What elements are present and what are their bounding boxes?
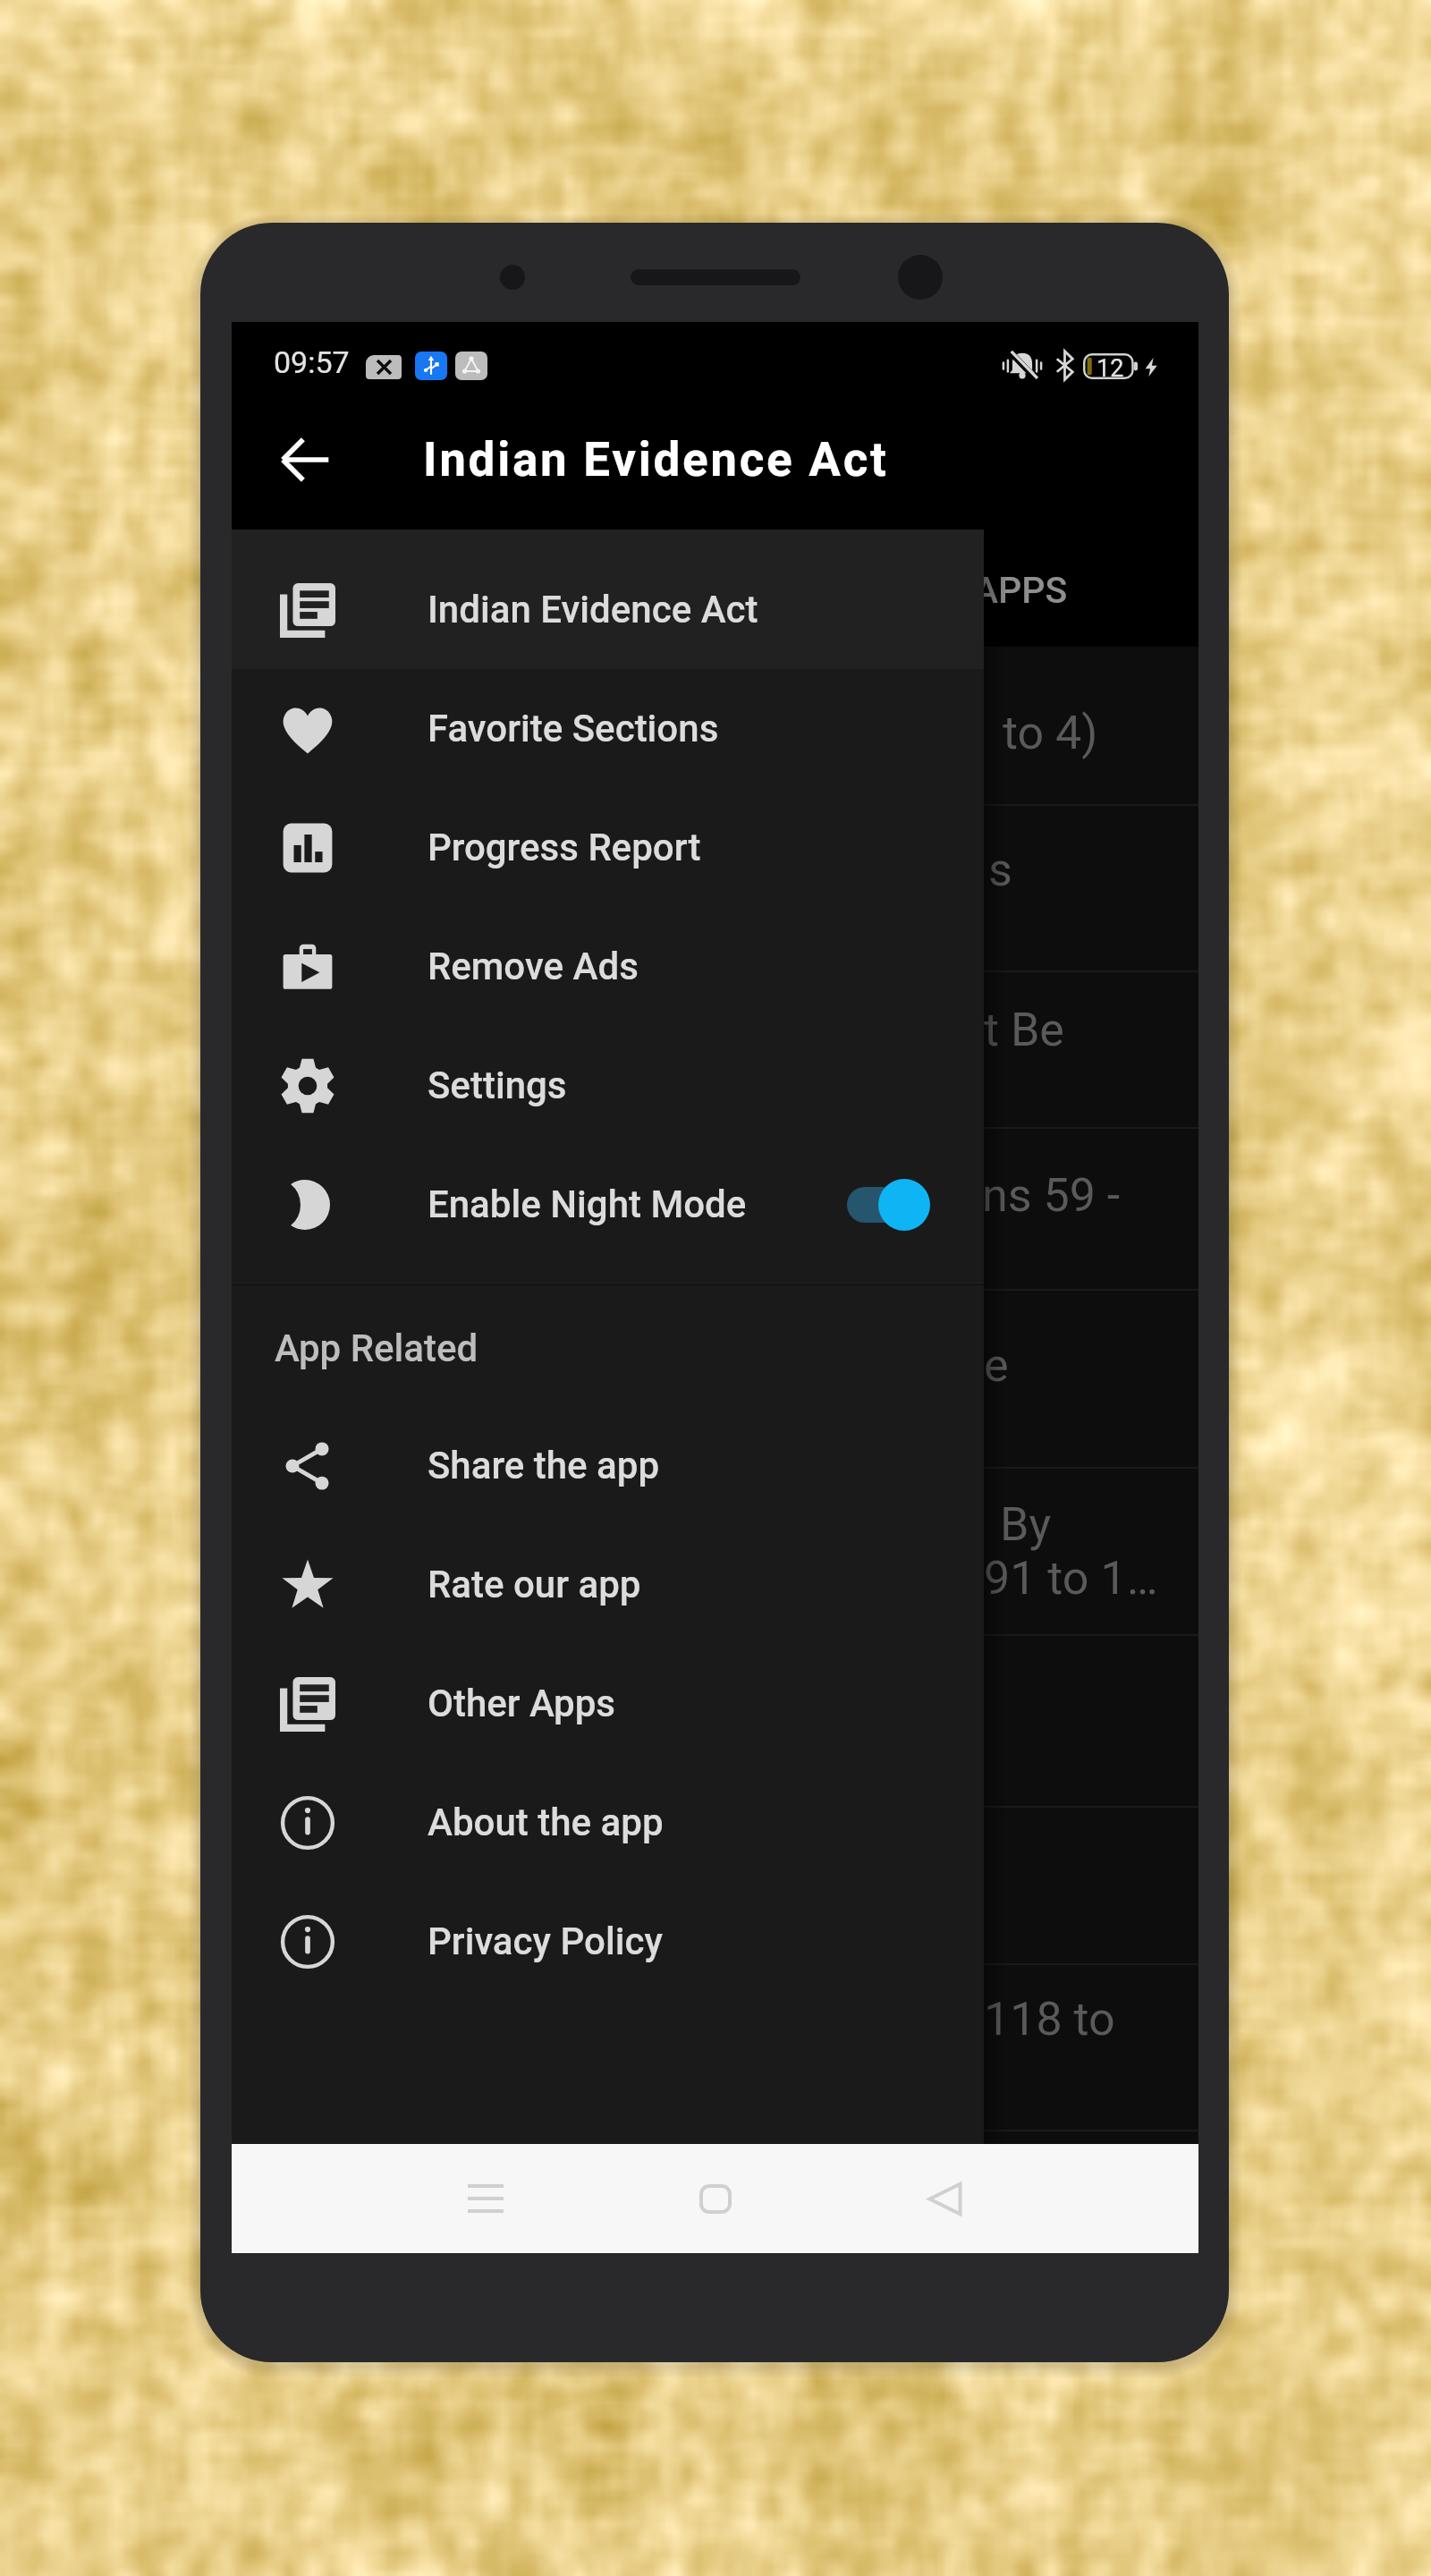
staticText: Remove Ads — [428, 945, 639, 988]
button[interactable]: Other Apps — [232, 1644, 984, 1763]
button[interactable]: Rate our app — [232, 1525, 984, 1644]
button[interactable]: Recents — [414, 2145, 557, 2252]
staticText: Rate our app — [428, 1563, 641, 1606]
button[interactable] — [232, 1806, 1198, 1963]
staticText: Other Apps — [428, 1682, 616, 1725]
staticText: t Be — [984, 1003, 1064, 1057]
staticText: ns 59 - — [982, 1168, 1121, 1223]
button[interactable] — [232, 804, 1198, 970]
button[interactable]: Toggle night mode — [847, 1156, 984, 1254]
button[interactable]: Share the app — [232, 1406, 984, 1525]
button[interactable]: Favorite Sections — [232, 669, 984, 788]
button[interactable]: Indian Evidence Act — [232, 530, 984, 669]
button[interactable]: Back — [254, 408, 358, 512]
staticText: e — [984, 1338, 1009, 1393]
button[interactable] — [232, 1963, 1198, 2130]
button[interactable] — [232, 1127, 1198, 1289]
staticText: By — [1000, 1497, 1052, 1552]
button[interactable] — [232, 970, 1198, 1127]
staticText: Privacy Policy — [428, 1919, 663, 1963]
button[interactable]: Remove Ads — [232, 907, 984, 1026]
button[interactable] — [232, 1289, 1198, 1467]
staticText: Indian Evidence Act — [428, 588, 758, 631]
staticText: 12 — [1097, 354, 1124, 380]
button[interactable]: Privacy Policy — [232, 1882, 984, 2001]
button[interactable]: About the app — [232, 1763, 984, 1882]
staticText: 91 to 1… — [984, 1551, 1158, 1606]
staticText: Progress Report — [428, 826, 701, 869]
staticText: Share the app — [428, 1444, 660, 1487]
staticText: 118 to — [984, 1992, 1115, 2046]
staticText: to 4) — [1003, 706, 1098, 760]
staticText: Settings — [428, 1063, 567, 1107]
button[interactable] — [232, 1467, 1198, 1634]
staticText: Indian Evidence Act — [423, 432, 889, 487]
staticText: OTHER APPS — [849, 569, 1068, 612]
button[interactable] — [232, 1634, 1198, 1806]
button[interactable]: Back — [873, 2145, 1016, 2252]
button[interactable]: Progress Report — [232, 788, 984, 907]
staticText: s — [988, 843, 1012, 897]
button[interactable]: Home — [643, 2145, 788, 2252]
staticText: Favorite Sections — [428, 707, 719, 750]
staticText: App Related — [275, 1326, 478, 1370]
staticText: Enable Night Mode — [428, 1182, 747, 1226]
staticText: 09:57 — [274, 344, 350, 380]
button[interactable]: Enable Night Mode — [232, 1145, 984, 1264]
staticText: About the app — [428, 1801, 664, 1844]
button[interactable]: Settings — [232, 1026, 984, 1145]
